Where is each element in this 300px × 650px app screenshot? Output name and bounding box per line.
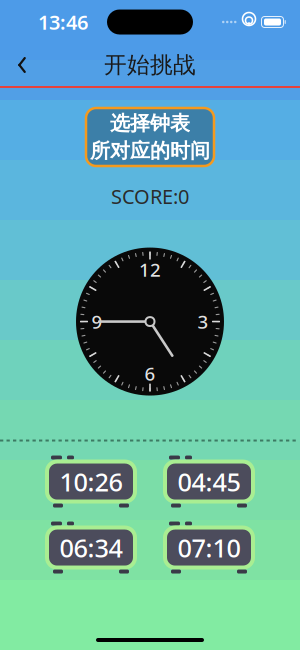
button[interactable]: 返回 [0,44,44,86]
button[interactable]: 06:34 [45,522,137,574]
staticText: 12 [139,257,161,282]
staticText: 07:10 [177,531,240,564]
staticText: 所对应的时间 [90,138,210,163]
staticText: 06:34 [59,531,122,564]
staticText: 6 [144,361,155,386]
button[interactable]: 07:10 [163,522,255,574]
staticText: 9 [91,309,102,334]
staticText: 开始挑战 [104,51,196,79]
staticText: 13:46 [38,9,88,35]
button[interactable]: 04:45 [163,456,255,508]
staticText: 04:45 [177,465,240,498]
staticText: 10:26 [59,465,122,498]
staticText: SCORE:0 [111,183,189,210]
staticText: 选择钟表 [110,111,190,135]
staticText: 3 [197,309,208,334]
button[interactable]: 10:26 [45,456,137,508]
